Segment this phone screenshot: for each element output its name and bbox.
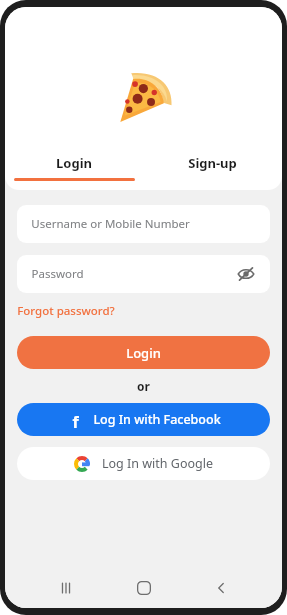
staticText: Login — [126, 344, 161, 362]
staticText: Log In with Facebook — [93, 411, 221, 428]
button[interactable]: Back — [204, 571, 238, 605]
button[interactable]: Recent apps — [49, 571, 83, 605]
button[interactable]: Home — [127, 571, 161, 605]
button[interactable]: Username or Mobile Number — [17, 205, 270, 243]
button[interactable]: Log In with Google — [17, 447, 270, 480]
button[interactable]: Show password — [236, 264, 256, 284]
button[interactable]: f — [17, 403, 270, 436]
button[interactable]: Password — [17, 255, 270, 293]
button[interactable]: Forgot password? — [17, 303, 115, 319]
staticText: Username or Mobile Number — [31, 216, 190, 232]
staticText: Sign-up — [188, 154, 237, 172]
button[interactable]: Login — [5, 148, 143, 190]
staticText: Forgot password? — [17, 303, 115, 319]
staticText: f — [72, 411, 79, 428]
button[interactable]: Sign-up — [143, 148, 282, 190]
staticText: Login — [56, 154, 92, 172]
button[interactable]: Login — [17, 336, 270, 369]
staticText: Password — [31, 266, 84, 282]
staticText: or — [137, 378, 150, 394]
staticText: Log In with Google — [102, 455, 213, 472]
